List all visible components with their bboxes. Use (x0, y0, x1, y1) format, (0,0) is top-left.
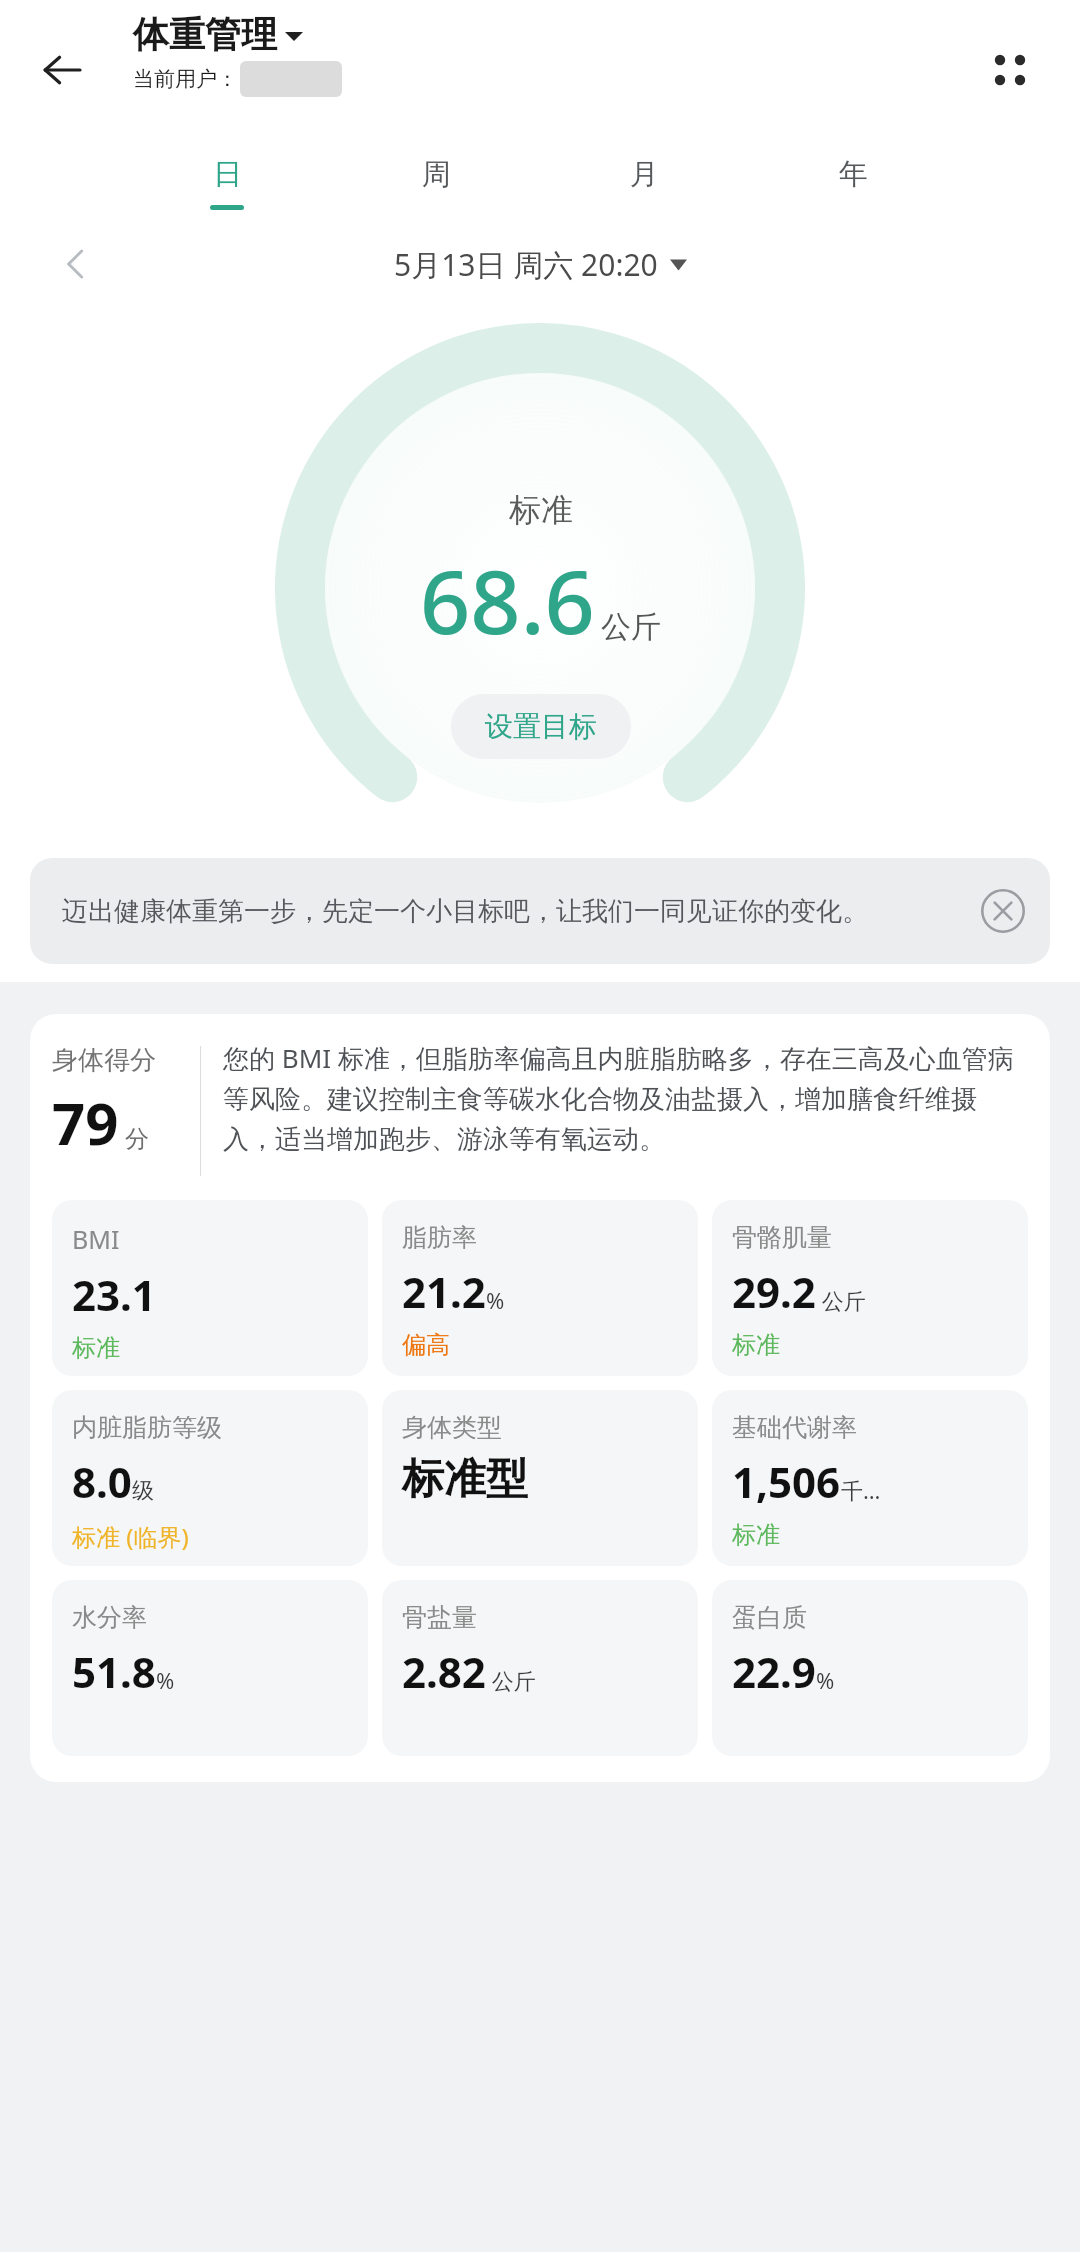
staticText: 标准型 (402, 1453, 528, 1506)
staticText: 29.2 (732, 1263, 816, 1320)
staticText: 周 (422, 156, 451, 193)
staticText: 79 (52, 1083, 119, 1162)
staticText: 千… (841, 1475, 881, 1505)
button[interactable]: Previous day (48, 236, 104, 292)
staticText: 脂肪率 (402, 1222, 477, 1253)
staticText: 日 (213, 156, 242, 193)
staticText: 年 (839, 156, 868, 193)
staticText: 标准 (509, 490, 573, 530)
staticText: 标准 (72, 1333, 120, 1363)
button[interactable]: 基础代谢率 (712, 1390, 1028, 1566)
button[interactable]: 月 (613, 150, 675, 216)
staticText: 基础代谢率 (732, 1412, 857, 1443)
staticText: 偏高 (402, 1330, 450, 1360)
button[interactable]: 水分率 (52, 1580, 368, 1756)
staticText: 标准 (732, 1520, 780, 1550)
staticText: BMI (72, 1222, 120, 1256)
staticText: 迈出健康体重第一步，先定一个小目标吧，让我们一同见证你的变化。 (62, 895, 868, 928)
button[interactable]: More options (974, 34, 1046, 106)
staticText: % (486, 1285, 505, 1315)
button[interactable]: Dismiss (976, 884, 1030, 938)
button[interactable]: 身体类型 (382, 1390, 698, 1566)
staticText: 1,506 (732, 1453, 841, 1510)
staticText: 51.8 (72, 1643, 156, 1700)
staticText: % (816, 1665, 835, 1695)
button[interactable]: 周 (405, 150, 467, 216)
staticText: 21.2 (402, 1263, 486, 1320)
button[interactable]: BMI (52, 1200, 368, 1376)
staticText: 体重管理 (133, 12, 277, 57)
staticText: 23.1 (72, 1266, 156, 1323)
button[interactable]: 骨骼肌量 (712, 1200, 1028, 1376)
staticText: 月 (630, 156, 659, 193)
staticText: 2.82 (402, 1643, 486, 1700)
button[interactable]: 骨盐量 (382, 1580, 698, 1756)
staticText: 68.6 (420, 540, 595, 660)
staticText: 标准 (732, 1330, 780, 1360)
button[interactable]: 迈出健康体重第一步，先定一个小目标吧，让我们一同见证你的变化。 (30, 858, 1050, 964)
staticText: 公斤 (816, 1285, 866, 1315)
button[interactable]: 内脏脂肪等级 (52, 1390, 368, 1566)
staticText: 内脏脂肪等级 (72, 1412, 222, 1443)
staticText: 当前用户： (133, 66, 238, 92)
staticText: 标准 (临界) (72, 1520, 189, 1553)
staticText: 分 (125, 1124, 149, 1154)
staticText: 设置目标 (485, 709, 597, 744)
staticText: 身体类型 (402, 1412, 502, 1443)
staticText: 8.0 (72, 1453, 132, 1510)
staticText: 蛋白质 (732, 1602, 807, 1633)
staticText: 公斤 (601, 608, 661, 646)
button[interactable]: 5月13日 周六 20:20 (384, 238, 697, 291)
staticText: 水分率 (72, 1602, 147, 1633)
button[interactable]: Back (30, 38, 94, 102)
button[interactable]: 脂肪率 (382, 1200, 698, 1376)
staticText: 22.9 (732, 1643, 816, 1700)
button[interactable]: 设置目标 (451, 694, 631, 759)
staticText: 骨骼肌量 (732, 1222, 832, 1253)
button[interactable]: 年 (822, 150, 884, 216)
staticText: 身体得分 (52, 1044, 156, 1077)
button[interactable]: 日 (196, 150, 258, 216)
staticText: 公斤 (486, 1665, 536, 1695)
staticText: 5月13日 周六 20:20 (394, 244, 658, 285)
staticText: % (156, 1665, 175, 1695)
button[interactable]: 蛋白质 (712, 1580, 1028, 1756)
staticText: 您的 BMI 标准，但脂肪率偏高且内脏脂肪略多，存在三高及心血管病等风险。建议控… (223, 1040, 1028, 1156)
staticText: 骨盐量 (402, 1602, 477, 1633)
staticText: 级 (132, 1477, 154, 1505)
